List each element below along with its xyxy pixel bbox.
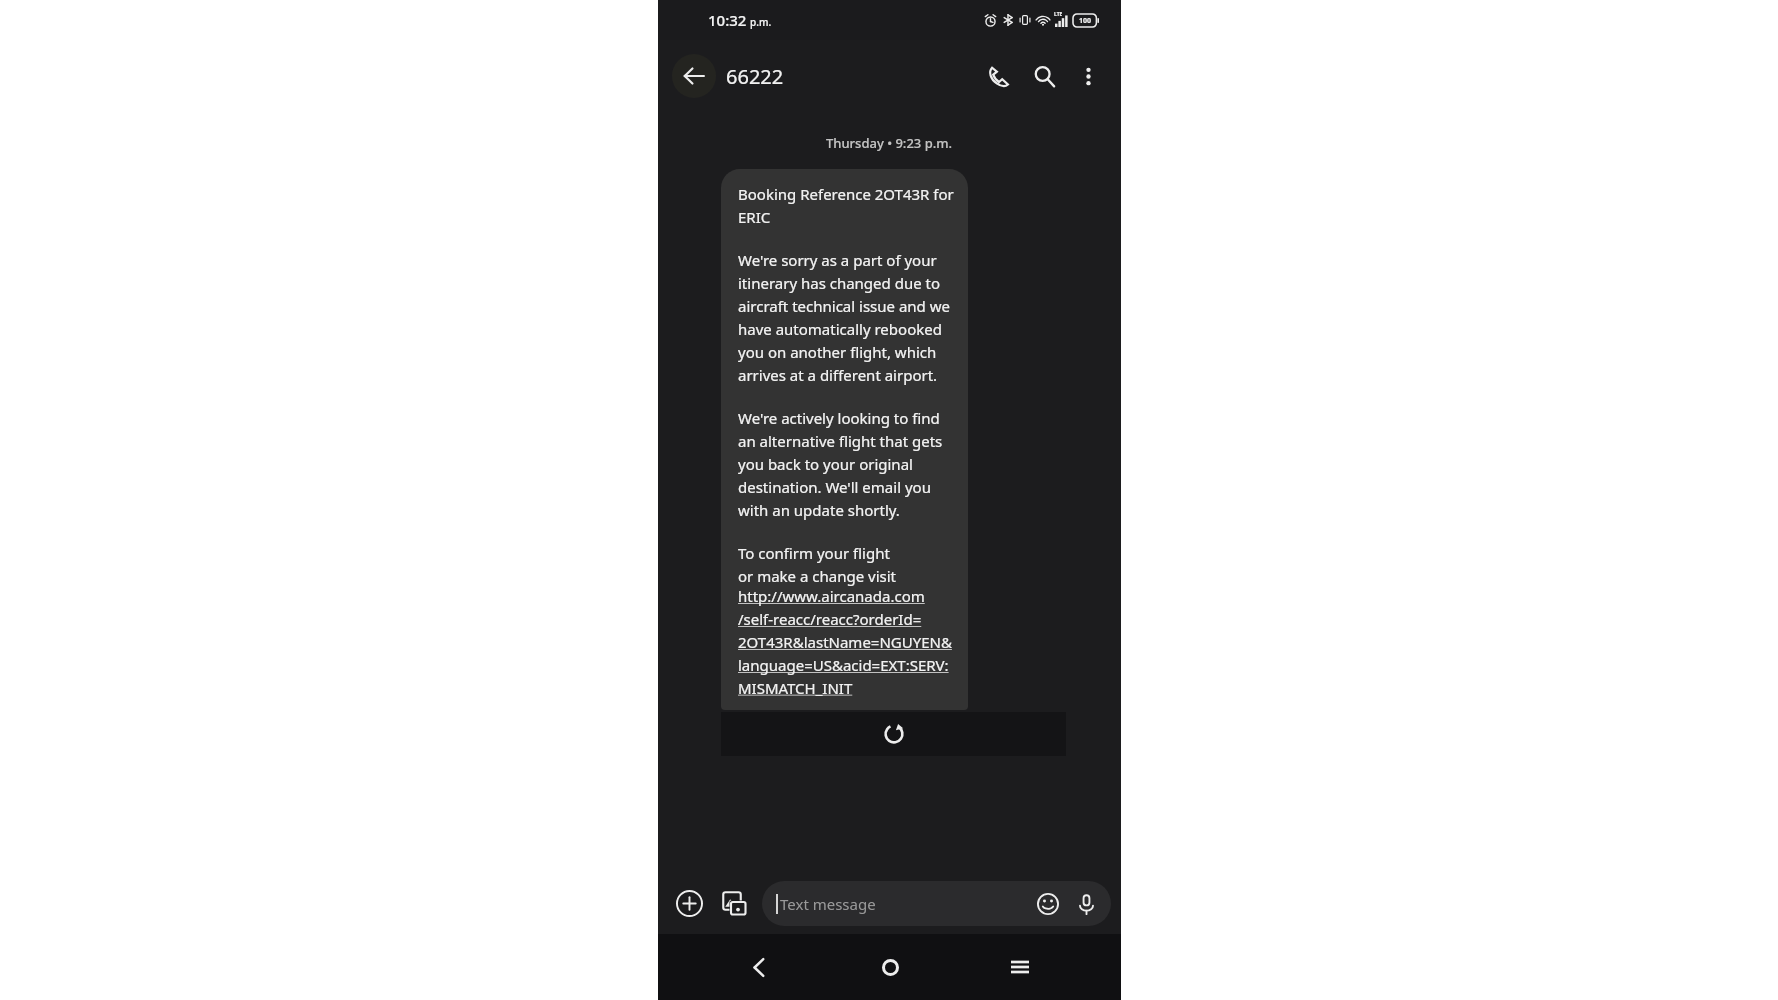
staticText: Text message [780,894,876,914]
button[interactable]: More options [1067,55,1109,97]
staticText: We're actively looking to find an altern… [738,408,943,520]
button[interactable]: http://www.aircanada.com /self-reacc/rea… [738,586,952,698]
button[interactable]: Emoji [1029,885,1067,923]
staticText: We're sorry as a part of your itinerary … [738,250,950,385]
staticText: p.m. [750,15,772,29]
staticText: 66222 [726,63,784,90]
button[interactable]: Gallery [713,882,755,924]
button[interactable]: Booking Reference 2OT43R for ERIC [721,169,968,710]
button[interactable]: Voice input [1067,885,1105,923]
button[interactable]: Call [975,53,1021,99]
staticText: LTE [1054,11,1063,18]
staticText: 10:32 [708,10,747,30]
button[interactable]: Add attachment [668,882,710,924]
button[interactable]: Back [730,938,788,996]
staticText: To confirm your flight or make a change … [738,543,896,586]
button[interactable]: Text message [762,881,1111,926]
button[interactable]: Recent apps [991,938,1049,996]
staticText: 100 [1079,16,1092,26]
staticText: Thursday • 9:23 p.m. [826,134,953,152]
button[interactable]: Search [1021,53,1067,99]
button[interactable]: Home [861,938,919,996]
button[interactable]: Back [672,54,716,98]
staticText: Booking Reference 2OT43R for ERIC [738,184,954,227]
